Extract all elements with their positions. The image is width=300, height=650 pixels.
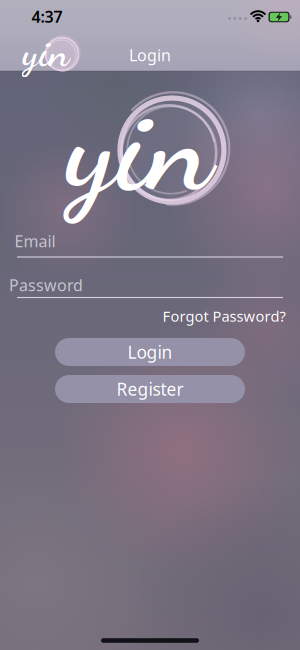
staticText: Forgot Password? (162, 306, 285, 326)
button[interactable]: yin home (6, 33, 86, 77)
button[interactable]: Login (55, 338, 245, 366)
staticText: Email (14, 230, 55, 252)
staticText: Login (129, 44, 171, 66)
staticText: Register (116, 377, 183, 400)
staticText: yin (66, 67, 212, 223)
staticText: yin (22, 27, 69, 77)
staticText: Login (127, 340, 172, 363)
staticText: Password (9, 274, 83, 296)
button[interactable]: Forgot Password? (149, 306, 299, 326)
button[interactable]: Register (55, 375, 245, 403)
staticText: 4:37 (31, 6, 62, 27)
